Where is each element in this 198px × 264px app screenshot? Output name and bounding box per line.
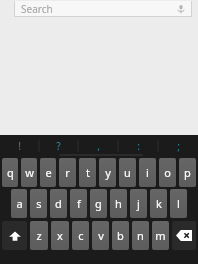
button[interactable]: o xyxy=(159,158,176,187)
staticText: c xyxy=(78,228,84,243)
staticText: k xyxy=(156,196,162,211)
staticText: s xyxy=(36,196,42,211)
staticText: j xyxy=(137,196,140,211)
staticText: ? xyxy=(56,139,61,153)
button[interactable]: l xyxy=(170,189,187,218)
staticText: v xyxy=(98,228,104,243)
staticText: y xyxy=(105,165,111,180)
button[interactable]: ; xyxy=(158,135,198,156)
staticText: f xyxy=(77,196,81,211)
button[interactable]: j xyxy=(130,189,147,218)
button[interactable]: v xyxy=(92,221,109,250)
button[interactable]: x xyxy=(51,221,69,250)
button[interactable]: b xyxy=(112,221,129,250)
button[interactable]: w xyxy=(21,158,37,187)
staticText: z xyxy=(36,228,42,243)
button[interactable]: f xyxy=(70,189,87,218)
button[interactable]: a xyxy=(11,189,27,218)
staticText: x xyxy=(57,228,63,243)
button[interactable]: n xyxy=(132,221,149,250)
button[interactable]: y xyxy=(99,158,116,187)
button[interactable]: m xyxy=(152,221,169,250)
staticText: ! xyxy=(18,139,21,153)
staticText: q xyxy=(7,165,14,180)
staticText: l xyxy=(177,196,180,211)
staticText: e xyxy=(45,165,52,180)
staticText: b xyxy=(117,228,124,243)
button[interactable]: ? xyxy=(39,135,78,156)
button[interactable]: Backspace xyxy=(172,221,196,250)
button[interactable]: s xyxy=(30,189,47,218)
button[interactable]: h xyxy=(110,189,127,218)
staticText: m xyxy=(155,228,166,243)
staticText: g xyxy=(95,196,102,211)
button[interactable]: p xyxy=(179,158,196,187)
button[interactable]: e xyxy=(40,158,56,187)
button[interactable]: , xyxy=(78,135,118,156)
button[interactable]: z xyxy=(30,221,48,250)
button[interactable]: : xyxy=(118,135,158,156)
button[interactable]: r xyxy=(59,158,76,187)
staticText: i xyxy=(146,165,149,180)
button[interactable]: t xyxy=(79,158,96,187)
staticText: w xyxy=(25,165,34,180)
button[interactable]: i xyxy=(139,158,156,187)
staticText: : xyxy=(137,139,140,153)
staticText: n xyxy=(137,228,144,243)
button[interactable]: c xyxy=(72,221,89,250)
button[interactable]: Voice search xyxy=(175,3,187,15)
staticText: r xyxy=(65,165,70,180)
staticText: t xyxy=(86,165,90,180)
button[interactable]: d xyxy=(50,189,67,218)
button[interactable]: ! xyxy=(0,135,39,156)
button[interactable]: k xyxy=(150,189,167,218)
staticText: u xyxy=(124,165,131,180)
staticText: a xyxy=(16,196,23,211)
staticText: Search xyxy=(21,2,53,16)
staticText: ; xyxy=(177,139,180,153)
staticText: h xyxy=(115,196,122,211)
button[interactable]: q xyxy=(2,158,18,187)
staticText: d xyxy=(55,196,62,211)
button[interactable]: Search xyxy=(14,1,192,17)
staticText: , xyxy=(97,139,100,153)
staticText: o xyxy=(164,165,171,180)
button[interactable]: g xyxy=(90,189,107,218)
button[interactable]: u xyxy=(119,158,136,187)
button[interactable]: Shift xyxy=(2,221,27,250)
staticText: p xyxy=(184,165,191,180)
